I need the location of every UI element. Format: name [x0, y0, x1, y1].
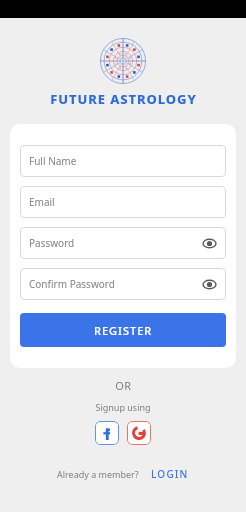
button[interactable]: Sign up with Facebook	[95, 421, 119, 445]
staticText: OR	[115, 378, 132, 393]
button[interactable]: REGISTER	[20, 313, 226, 347]
button[interactable]: Show password	[201, 276, 217, 292]
staticText: REGISTER	[94, 323, 153, 338]
button[interactable]: Full Name	[20, 145, 226, 177]
staticText: Signup using	[95, 401, 151, 413]
staticText: Full Name	[29, 154, 217, 168]
button[interactable]: LOGIN	[151, 467, 189, 481]
staticText: FUTURE ASTROLOGY	[50, 90, 197, 108]
staticText: Confirm Password	[29, 277, 201, 291]
staticText: LOGIN	[151, 467, 189, 481]
staticText: Password	[29, 236, 201, 250]
button[interactable]: Show password	[201, 235, 217, 251]
button[interactable]: Confirm Password	[20, 268, 226, 300]
staticText: Already a member?	[57, 468, 139, 480]
staticText: Email	[29, 195, 217, 209]
button[interactable]: Email	[20, 186, 226, 218]
button[interactable]: Password	[20, 227, 226, 259]
button[interactable]: Sign up with Google	[127, 421, 151, 445]
